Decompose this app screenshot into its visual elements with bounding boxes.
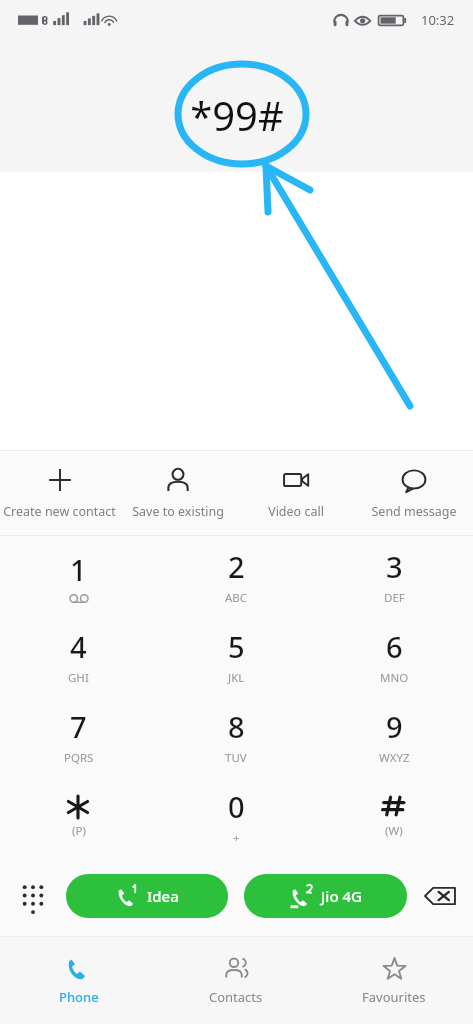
button[interactable]: 1 (0, 536, 157, 616)
button[interactable]: Phone (0, 937, 157, 1024)
button[interactable]: Dialpad (0, 856, 66, 936)
staticText: ABC (225, 590, 248, 606)
button[interactable]: Video call (237, 451, 355, 535)
staticText: 1 (70, 550, 87, 589)
staticText: 5 (228, 627, 245, 666)
staticText: *99# (190, 88, 284, 142)
staticText: JKL (228, 670, 245, 686)
staticText: 9 (386, 707, 403, 746)
staticText: Idea (147, 886, 179, 906)
staticText: PQRS (64, 750, 94, 766)
staticText: 0 (228, 787, 245, 826)
staticText: 7 (70, 707, 87, 746)
staticText: Send message (371, 503, 457, 520)
staticText: (P) (72, 823, 86, 839)
staticText: Create new contact (3, 503, 116, 520)
staticText: Favourites (362, 988, 426, 1006)
staticText: GHI (68, 670, 89, 686)
button[interactable]: 9 (315, 696, 473, 776)
button[interactable]: Idea (66, 874, 228, 918)
button[interactable]: Favourites (315, 937, 473, 1024)
staticText: TUV (225, 750, 247, 766)
staticText: (W) (385, 823, 403, 839)
staticText: DEF (384, 590, 405, 606)
button[interactable]: 4 (0, 616, 157, 696)
staticText: 2 (228, 547, 245, 586)
staticText: 8 (228, 707, 245, 746)
button[interactable]: Backspace (407, 856, 473, 936)
staticText: + (233, 830, 240, 846)
button[interactable]: (P) (0, 776, 157, 856)
button[interactable]: (W) (315, 776, 473, 856)
button[interactable]: 7 (0, 696, 157, 776)
staticText: Jio 4G (321, 886, 362, 906)
button[interactable]: Send message (355, 451, 473, 535)
button[interactable]: 0 (157, 776, 315, 856)
staticText: Save to existing (132, 503, 224, 520)
staticText: 10:32 (421, 11, 455, 29)
button[interactable]: 3 (315, 536, 473, 616)
button[interactable]: 5 (157, 616, 315, 696)
button[interactable]: 6 (315, 616, 473, 696)
button[interactable]: Save to existing (119, 451, 237, 535)
staticText: 4 (70, 627, 87, 666)
button[interactable]: 8 (157, 696, 315, 776)
staticText: Contacts (209, 988, 263, 1006)
button[interactable]: Jio 4G (244, 874, 407, 918)
button[interactable]: Contacts (157, 937, 315, 1024)
staticText: MNO (380, 670, 409, 686)
button[interactable]: Create new contact (0, 451, 119, 535)
button[interactable]: 2 (157, 536, 315, 616)
staticText: 6 (386, 627, 403, 666)
staticText: Phone (59, 988, 99, 1006)
staticText: WXYZ (379, 750, 410, 766)
staticText: Video call (268, 503, 324, 520)
staticText: 3 (386, 547, 403, 586)
